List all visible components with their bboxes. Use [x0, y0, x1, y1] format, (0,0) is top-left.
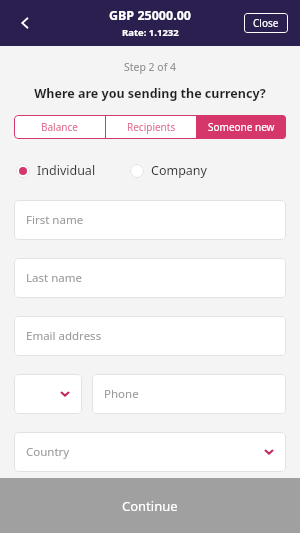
staticText: First name — [26, 212, 84, 228]
staticText: Continue — [122, 497, 178, 515]
staticText: Rate: 1.1232 — [122, 26, 179, 39]
staticText: GBP 25000.00 — [109, 7, 191, 24]
staticText: Individual — [37, 162, 96, 179]
staticText: Balance — [41, 120, 78, 134]
button[interactable]: Continue — [0, 478, 300, 533]
staticText: Step 2 of 4 — [0, 60, 300, 74]
button[interactable]: Someone new — [196, 115, 286, 139]
button[interactable] — [14, 374, 82, 414]
staticText: Someone new — [208, 120, 275, 134]
button[interactable]: Individual — [16, 160, 96, 181]
button[interactable]: Last name — [14, 258, 286, 298]
staticText: Country — [26, 444, 70, 460]
staticText: Where are you sending the currency? — [0, 85, 300, 102]
staticText: Close — [253, 16, 279, 30]
button[interactable]: Close — [244, 13, 288, 33]
button[interactable]: Back — [10, 8, 40, 38]
staticText: Email address — [26, 328, 102, 344]
staticText: Recipients — [127, 120, 176, 134]
button[interactable]: Phone — [92, 374, 286, 414]
button[interactable]: First name — [14, 200, 286, 240]
staticText: Company — [151, 162, 207, 179]
button[interactable]: Recipients — [106, 115, 196, 139]
button[interactable]: Balance — [14, 115, 105, 139]
button[interactable]: Country — [14, 432, 286, 472]
staticText: Phone — [104, 386, 139, 402]
staticText: Last name — [26, 270, 82, 286]
button[interactable]: Email address — [14, 316, 286, 356]
button[interactable]: Company — [130, 160, 207, 181]
